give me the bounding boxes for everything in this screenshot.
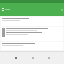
button[interactable] [1, 27, 63, 41]
button[interactable] [1, 17, 63, 26]
button[interactable]: Home [14, 56, 17, 59]
button[interactable]: Profile [47, 56, 50, 59]
button[interactable] [1, 42, 63, 50]
button[interactable]: Explore [31, 56, 34, 59]
button[interactable]: Menu [1, 8, 4, 11]
